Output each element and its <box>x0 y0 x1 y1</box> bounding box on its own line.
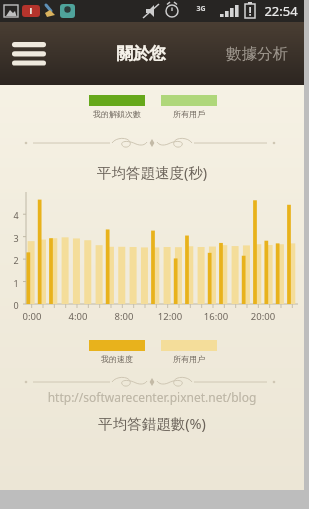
staticText: 所有用戶 <box>161 109 217 119</box>
staticText: 16:00 <box>200 310 232 323</box>
staticText: 1 <box>10 277 22 289</box>
staticText: 8:00 <box>108 310 140 323</box>
staticText: 20:00 <box>247 310 279 323</box>
button[interactable]: 關於您 <box>110 35 172 72</box>
staticText: http://softwarecenter.pixnet.net/blog <box>0 389 304 405</box>
staticText: 2 <box>10 254 22 266</box>
staticText: 數據分析 <box>226 44 288 64</box>
staticText: 3G <box>196 4 206 14</box>
staticText: 0:00 <box>16 310 48 323</box>
staticText: 關於您 <box>116 43 166 64</box>
staticText: 我的解鎖次數 <box>89 109 145 119</box>
button[interactable]: Menu <box>8 37 50 71</box>
staticText: 12:00 <box>154 310 186 323</box>
button[interactable]: 數據分析 <box>220 36 294 72</box>
staticText: 22:54 <box>264 2 298 20</box>
staticText: 我的速度 <box>89 354 145 364</box>
staticText: 3 <box>10 232 22 244</box>
staticText: 平均答錯題數(%) <box>0 413 304 433</box>
staticText: 0 <box>10 299 22 311</box>
staticText: 平均答題速度(秒) <box>0 162 304 182</box>
staticText: 4:00 <box>62 310 94 323</box>
staticText: 所有用户 <box>161 354 217 364</box>
staticText: 4 <box>10 209 22 221</box>
